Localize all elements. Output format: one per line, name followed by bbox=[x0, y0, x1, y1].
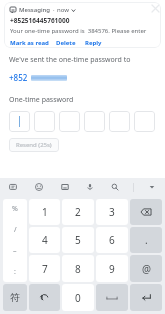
button[interactable] bbox=[59, 111, 80, 132]
staticText: 符 bbox=[10, 291, 20, 304]
staticText: Mark as read bbox=[10, 39, 49, 47]
staticText: : bbox=[14, 267, 16, 277]
staticText: We've sent the one-time password to bbox=[9, 55, 131, 65]
button[interactable]: Backspace bbox=[130, 199, 162, 225]
button[interactable]: Reply bbox=[85, 38, 102, 48]
button[interactable]: Resend (25s) bbox=[9, 138, 59, 152]
button[interactable]: Clipboard bbox=[58, 180, 72, 194]
staticText: Delete bbox=[56, 39, 76, 47]
staticText: 1 bbox=[42, 205, 48, 219]
button[interactable]: 符 bbox=[3, 284, 27, 311]
button[interactable]: More options bbox=[145, 180, 159, 194]
button[interactable]: Space bbox=[96, 284, 128, 311]
staticText: / bbox=[14, 225, 17, 235]
button[interactable]: 3 bbox=[96, 199, 128, 225]
staticText: Resend (25s) bbox=[16, 141, 52, 149]
staticText: % bbox=[12, 204, 18, 214]
staticText: Messaging bbox=[19, 6, 51, 14]
button[interactable]: / bbox=[3, 219, 27, 240]
button[interactable]: 6 bbox=[96, 227, 128, 253]
staticText: – bbox=[13, 246, 17, 256]
button[interactable] bbox=[134, 111, 155, 132]
button[interactable]: Voice input bbox=[83, 180, 97, 194]
button[interactable]: Search bbox=[108, 180, 122, 194]
staticText: 6 bbox=[109, 233, 115, 247]
staticText: +852 bbox=[9, 72, 28, 83]
button[interactable] bbox=[109, 111, 130, 132]
button[interactable]: @ bbox=[130, 255, 162, 282]
button[interactable]: Emoji bbox=[32, 180, 46, 194]
staticText: Reply bbox=[85, 39, 102, 47]
button[interactable]: . bbox=[130, 227, 162, 253]
staticText: 2 bbox=[75, 205, 81, 219]
staticText: now bbox=[57, 6, 69, 14]
staticText: 0 bbox=[75, 291, 81, 305]
staticText: . bbox=[145, 233, 148, 247]
staticText: · bbox=[53, 6, 55, 14]
button[interactable]: 2 bbox=[62, 199, 94, 225]
staticText: +852516445761000 bbox=[10, 16, 70, 25]
staticText: 9 bbox=[109, 262, 115, 276]
staticText: 5 bbox=[75, 233, 81, 247]
button[interactable]: Messaging bbox=[4, 2, 161, 48]
button[interactable]: Delete bbox=[56, 38, 76, 48]
button[interactable]: 8 bbox=[62, 255, 94, 282]
button[interactable]: 1 bbox=[29, 199, 60, 225]
button[interactable]: 5 bbox=[62, 227, 94, 253]
button[interactable]: Gboard bbox=[6, 180, 20, 194]
staticText: Let's verify your mobile number bbox=[9, 31, 156, 46]
button[interactable]: 0 bbox=[62, 284, 94, 311]
button[interactable]: Dismiss notification bbox=[149, 2, 161, 14]
staticText: 7 bbox=[42, 262, 48, 276]
button[interactable]: Enter bbox=[130, 284, 162, 311]
button[interactable]: – bbox=[3, 240, 27, 261]
staticText: Your one-time password is 384576. Please… bbox=[10, 27, 157, 35]
button[interactable]: 7 bbox=[29, 255, 60, 282]
button[interactable] bbox=[34, 111, 55, 132]
button[interactable] bbox=[84, 111, 105, 132]
staticText: 3 bbox=[109, 205, 115, 219]
staticText: @ bbox=[142, 262, 151, 276]
button[interactable]: : bbox=[3, 261, 27, 282]
button[interactable]: Mark as read bbox=[10, 38, 49, 48]
button[interactable]: Undo bbox=[29, 284, 60, 311]
button[interactable] bbox=[9, 111, 30, 132]
button[interactable]: 4 bbox=[29, 227, 60, 253]
staticText: 4 bbox=[42, 233, 48, 247]
button[interactable]: 9 bbox=[96, 255, 128, 282]
staticText: 8 bbox=[75, 262, 81, 276]
button[interactable]: % bbox=[3, 199, 27, 219]
staticText: One-time password bbox=[9, 95, 74, 105]
